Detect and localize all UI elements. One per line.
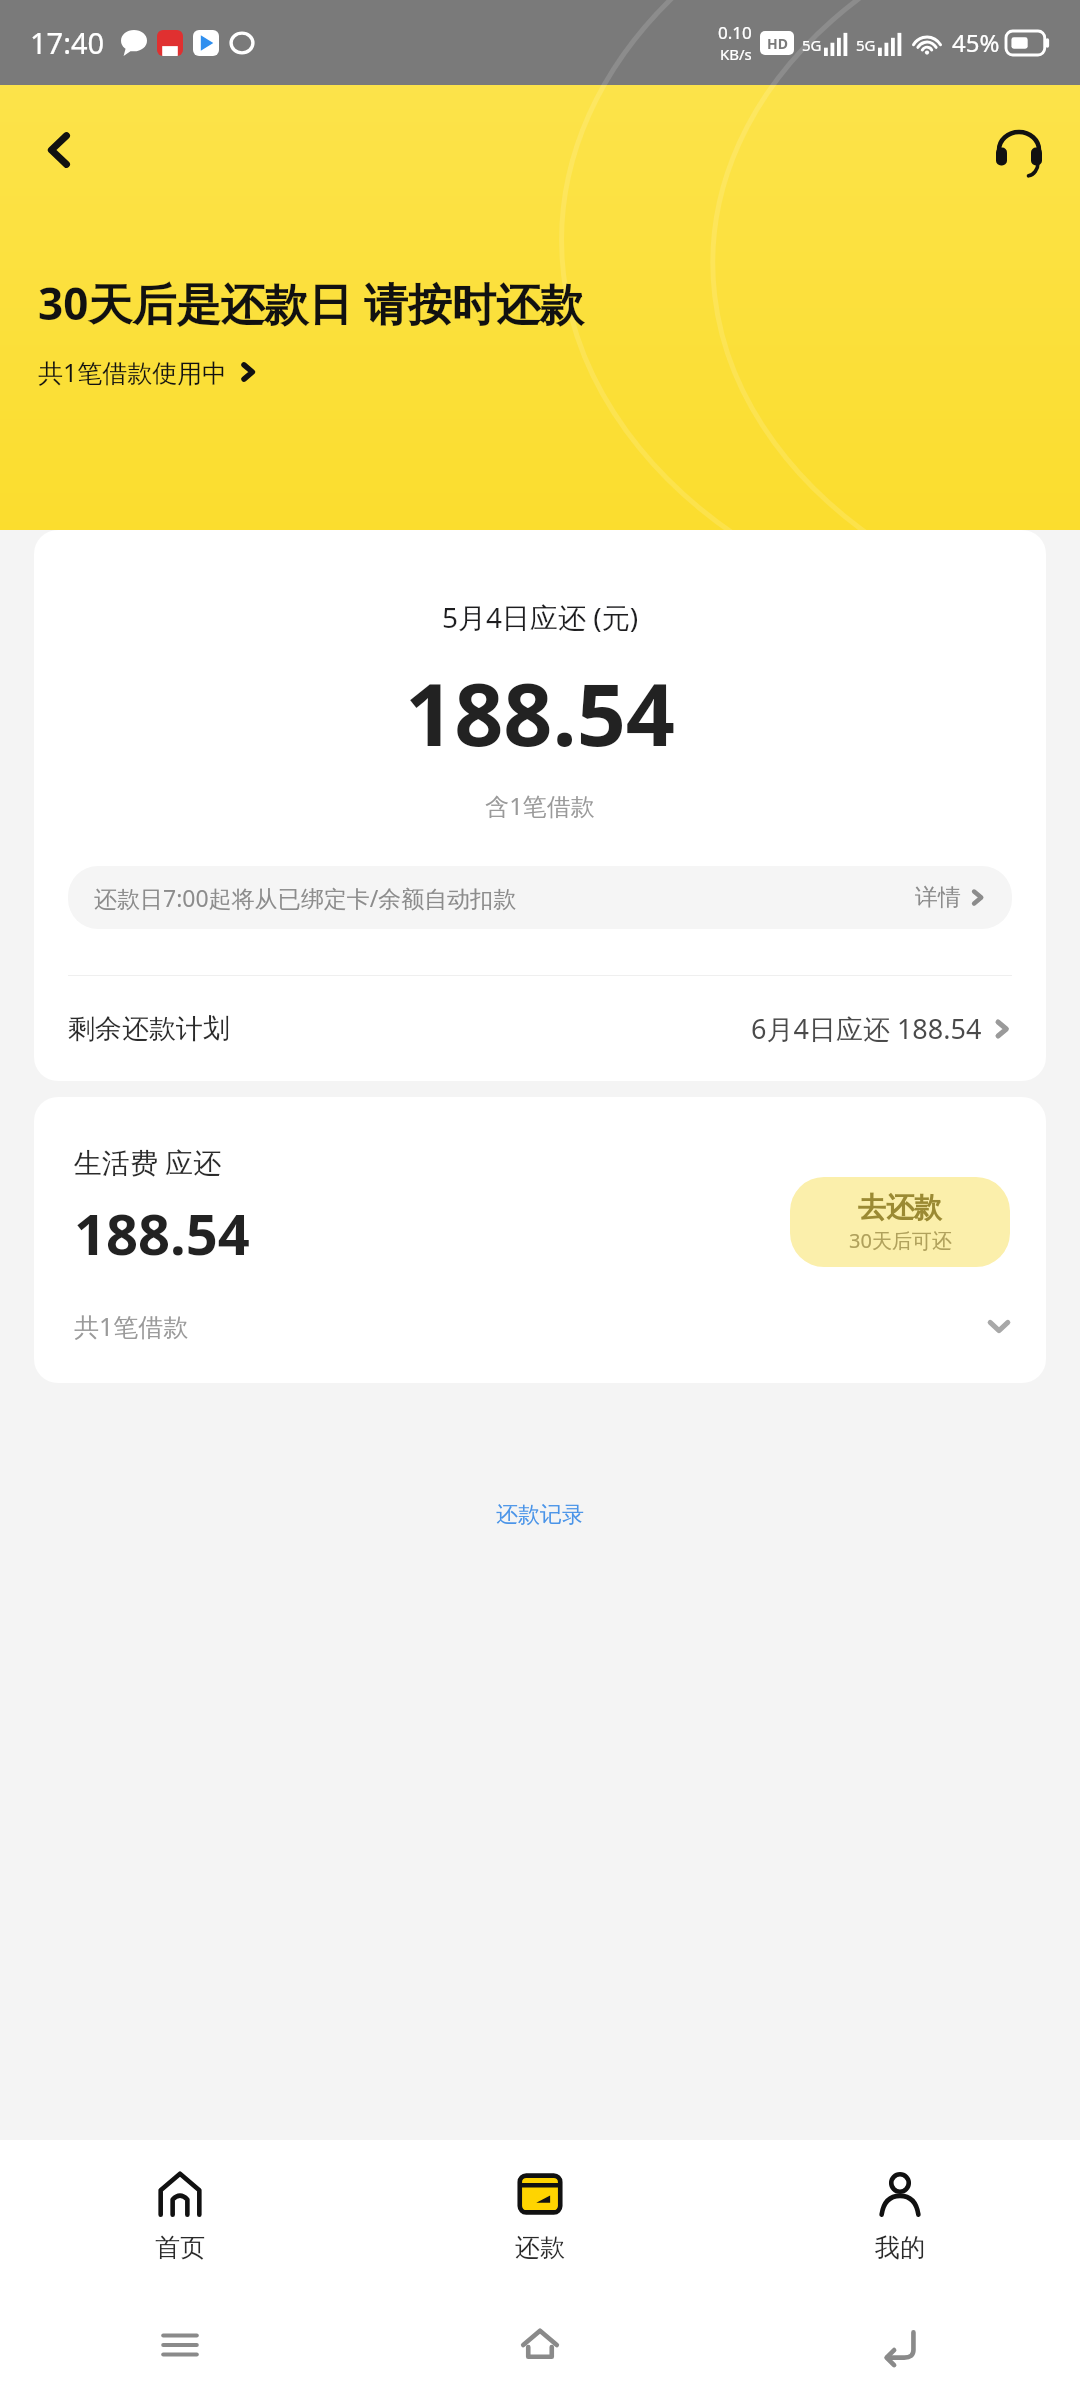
staticText: 生活费 应还: [74, 1143, 222, 1181]
button[interactable]: Customer service: [986, 117, 1052, 183]
staticText: 5月4日应还 (元): [34, 598, 1046, 636]
staticText: 30天后是还款日 请按时还款: [38, 273, 584, 333]
button[interactable]: 共1笔借款使用中: [38, 355, 258, 389]
button[interactable]: 还款日7:00起将从已绑定卡/余额自动扣款: [68, 866, 1012, 929]
staticText: 我的: [875, 2232, 925, 2263]
button[interactable]: Expand: [986, 1313, 1012, 1339]
staticText: 去还款: [858, 1190, 942, 1225]
staticText: 详情: [915, 883, 961, 912]
staticText: 5G: [856, 35, 876, 55]
button[interactable]: Recents: [0, 2290, 360, 2400]
button[interactable]: 去还款: [790, 1177, 1010, 1267]
staticText: KB/s: [720, 44, 752, 64]
staticText: 5G: [802, 35, 822, 55]
button[interactable]: 我的: [720, 2140, 1080, 2290]
staticText: 30天后可还: [849, 1227, 952, 1254]
staticText: 188.54: [34, 654, 1046, 771]
staticText: 6月4日应还 188.54: [751, 1010, 982, 1047]
button[interactable]: 还款记录: [0, 1501, 1080, 1529]
button[interactable]: Back: [28, 118, 92, 182]
staticText: 17:40: [30, 23, 105, 62]
staticText: 188.54: [74, 1195, 250, 1271]
staticText: 0.10: [718, 21, 752, 44]
button[interactable]: Home: [360, 2290, 720, 2400]
staticText: HD: [767, 34, 788, 53]
staticText: 首页: [155, 2232, 205, 2263]
staticText: 还款日7:00起将从已绑定卡/余额自动扣款: [94, 882, 517, 913]
staticText: 共1笔借款使用中: [38, 355, 228, 389]
staticText: 含1笔借款: [34, 789, 1046, 822]
button[interactable]: 还款: [360, 2140, 720, 2290]
staticText: 剩余还款计划: [68, 1012, 230, 1046]
staticText: 45%: [952, 26, 1000, 59]
staticText: 还款: [515, 2232, 565, 2263]
button[interactable]: 首页: [0, 2140, 360, 2290]
staticText: 共1笔借款: [74, 1309, 189, 1343]
button[interactable]: Back: [720, 2290, 1080, 2400]
button[interactable]: 剩余还款计划: [34, 976, 1046, 1081]
